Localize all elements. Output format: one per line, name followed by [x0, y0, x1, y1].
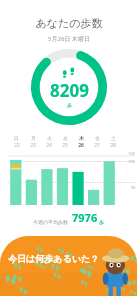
staticText: 27: [94, 142, 100, 149]
staticText: 26: [78, 142, 84, 149]
staticText: 木: [79, 135, 84, 141]
staticText: 金: [95, 135, 100, 141]
button[interactable]: 今日は何歩あるいた？: [0, 236, 137, 296]
staticText: 水: [63, 135, 68, 141]
other: キャラクター: [97, 244, 133, 296]
staticText: 今週の平均歩数: [33, 219, 69, 225]
staticText: 土: [111, 135, 116, 141]
staticText: 24: [46, 142, 52, 149]
staticText: 5K: [131, 185, 136, 190]
staticText: 歩: [67, 102, 72, 108]
button[interactable]: 今週の平均歩数: [33, 210, 104, 225]
staticText: 7976: [72, 210, 98, 225]
staticText: 8209: [50, 79, 89, 102]
staticText: 10K: [128, 159, 136, 164]
staticText: 月: [31, 135, 36, 141]
staticText: 22: [14, 142, 20, 149]
staticText: 5月26日 木曜日: [48, 35, 90, 43]
button[interactable]: 8209: [31, 49, 107, 125]
staticText: 今日は何歩あるいた？: [8, 253, 100, 264]
button[interactable]: 12K: [0, 151, 137, 207]
staticText: 25: [62, 142, 68, 149]
staticText: 歩: [99, 219, 104, 225]
staticText: あなたの歩数: [35, 16, 103, 30]
staticText: 28: [110, 142, 116, 149]
staticText: 火: [47, 135, 52, 141]
staticText: 12K: [128, 151, 136, 156]
staticText: 23: [30, 142, 36, 149]
staticText: 日: [14, 135, 19, 141]
